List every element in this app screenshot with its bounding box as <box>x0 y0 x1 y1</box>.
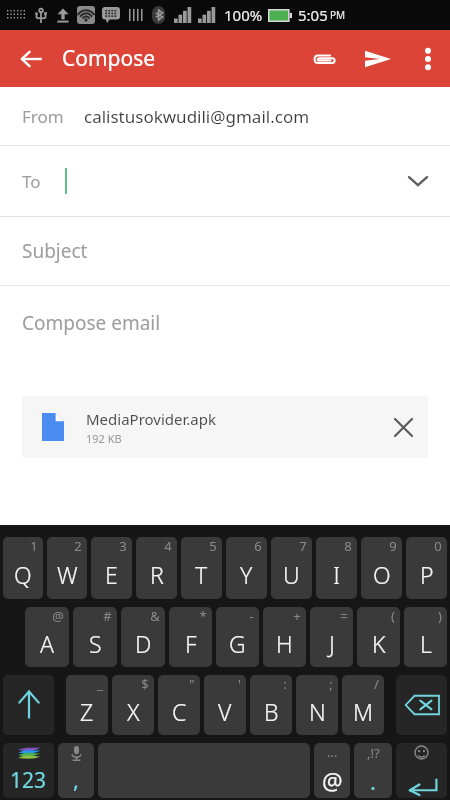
staticText: U <box>283 559 300 590</box>
button[interactable]: Send <box>350 30 406 87</box>
staticText: T <box>195 559 208 590</box>
staticText: ) <box>438 607 442 625</box>
staticText: M <box>353 696 374 727</box>
staticText: 5 <box>209 537 217 555</box>
staticText: 3 <box>119 537 127 555</box>
button[interactable]: Attach file <box>298 30 350 87</box>
button[interactable]: @ <box>25 607 69 667</box>
staticText: 123 <box>10 766 47 795</box>
staticText: P <box>420 559 434 590</box>
button[interactable]: ,!? <box>354 743 392 798</box>
staticText: H <box>276 628 293 659</box>
staticText: @ <box>322 765 343 796</box>
staticText: K <box>372 628 386 659</box>
staticText: & <box>150 607 160 625</box>
staticText: MediaProvider.apk <box>86 409 216 429</box>
staticText: Q <box>14 559 32 590</box>
staticText: Compose <box>62 44 156 73</box>
staticText: Z <box>80 696 94 727</box>
button[interactable]: " <box>158 675 200 735</box>
button[interactable]: + <box>263 607 306 667</box>
staticText: L <box>420 628 432 659</box>
button[interactable]: Compose email <box>0 286 450 360</box>
staticText: F <box>185 628 197 659</box>
staticText: S <box>89 628 102 659</box>
staticText: 192 KB <box>86 431 122 446</box>
button[interactable]: & <box>121 607 165 667</box>
button[interactable]: * <box>169 607 212 667</box>
staticText: V <box>218 696 232 727</box>
staticText: N <box>309 696 326 727</box>
staticText: 100% <box>224 5 263 25</box>
button[interactable]: 7 <box>271 537 312 599</box>
staticText: ; <box>329 675 333 693</box>
button[interactable]: Remove attachment <box>378 402 428 452</box>
button[interactable]: 0 <box>406 537 447 599</box>
staticText: calistusokwudili@gmail.com <box>84 105 310 128</box>
button[interactable]: 3 <box>91 537 132 599</box>
button[interactable]: ; <box>296 675 338 735</box>
button[interactable]: 8 <box>316 537 357 599</box>
button[interactable]: ' <box>204 675 246 735</box>
button[interactable]: Expand recipients <box>394 157 442 205</box>
staticText: @ <box>52 607 64 625</box>
staticText: , <box>73 764 79 794</box>
button[interactable]: ) <box>404 607 447 667</box>
staticText: . <box>370 766 376 796</box>
button[interactable]: _ <box>66 675 108 735</box>
staticText: " <box>189 675 195 693</box>
button[interactable]: Back <box>0 30 62 87</box>
button[interactable]: More options <box>406 30 450 87</box>
button[interactable]: 1 <box>3 537 43 599</box>
staticText: X <box>127 696 140 727</box>
staticText: * <box>199 607 207 625</box>
button[interactable]: Numbers and symbols <box>3 743 54 798</box>
staticText: ' <box>238 675 241 693</box>
button[interactable]: 5 <box>181 537 222 599</box>
staticText: Subject <box>22 238 88 264</box>
staticText: O <box>373 559 391 590</box>
button[interactable]: - <box>216 607 259 667</box>
staticText: E <box>105 559 118 590</box>
button[interactable]: : <box>250 675 292 735</box>
button[interactable]: ... <box>314 743 350 798</box>
staticText: # <box>103 607 112 625</box>
staticText: = <box>340 607 348 625</box>
staticText: PM <box>330 8 346 22</box>
button[interactable]: = <box>310 607 353 667</box>
button[interactable]: From <box>0 87 450 145</box>
staticText: Y <box>240 559 253 590</box>
button[interactable]: Enter <box>396 743 447 798</box>
staticText: 0 <box>434 537 442 555</box>
button[interactable]: Backspace <box>396 675 447 735</box>
staticText: R <box>150 559 164 590</box>
staticText: ... <box>327 743 338 761</box>
button[interactable]: 9 <box>361 537 402 599</box>
button[interactable]: Subject <box>0 217 450 285</box>
button[interactable]: MediaProvider.apk <box>22 396 428 458</box>
staticText: 9 <box>389 537 397 555</box>
button[interactable]: $ <box>112 675 154 735</box>
staticText: G <box>229 628 246 659</box>
button[interactable]: ( <box>357 607 400 667</box>
button[interactable]: 2 <box>47 537 87 599</box>
staticText: 4 <box>164 537 172 555</box>
button[interactable]: 6 <box>226 537 267 599</box>
staticText: / <box>374 675 379 693</box>
button[interactable]: Shift <box>3 675 54 735</box>
staticText: ( <box>391 607 395 625</box>
staticText: D <box>135 628 152 659</box>
button[interactable]: To <box>0 146 450 216</box>
button[interactable]: 4 <box>136 537 177 599</box>
staticText: To <box>22 170 41 193</box>
button[interactable]: # <box>73 607 117 667</box>
button[interactable]: Comma, voice input <box>58 743 94 798</box>
button[interactable]: / <box>342 675 384 735</box>
staticText: 7 <box>299 537 307 555</box>
staticText: 5:05 <box>298 5 328 25</box>
staticText: From <box>22 105 64 128</box>
staticText: ,!? <box>367 744 380 762</box>
staticText: W <box>57 559 78 590</box>
staticText: Compose email <box>22 310 161 336</box>
